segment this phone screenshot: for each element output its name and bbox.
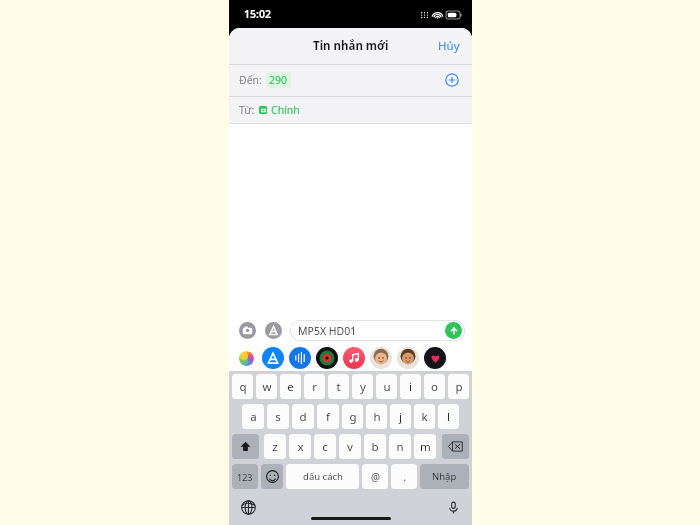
staticText: Đến: [239,73,262,87]
button[interactable]: @ [362,464,388,489]
staticText: x [297,439,304,455]
button[interactable]: b [364,434,386,459]
staticText: Hủy [438,38,460,54]
staticText: 15:02 [244,7,271,21]
button[interactable]: Backspace [442,434,469,459]
button[interactable]: q [232,374,253,399]
staticText: y [360,379,366,395]
button[interactable]: g [342,404,363,429]
button[interactable]: l [438,404,459,429]
button[interactable]: e [280,374,301,399]
other: Shift [239,440,252,453]
button[interactable]: y [352,374,373,399]
button[interactable]: m [414,434,436,459]
button[interactable]: f [317,404,339,429]
staticText: z [272,439,278,455]
button[interactable]: Photos [235,347,257,369]
staticText: i [409,379,412,395]
button[interactable]: v [339,434,361,459]
button[interactable]: Emoji [261,464,283,489]
staticText: 123 [237,471,253,483]
staticText: k [421,409,428,425]
button[interactable]: App [424,347,446,369]
button[interactable]: 123 [232,464,258,489]
button[interactable]: Apple Music [343,347,365,369]
button[interactable]: Add contact [440,68,464,92]
staticText: 290 [269,73,288,87]
button[interactable]: j [390,404,411,429]
staticText: Chính [271,103,300,117]
button[interactable]: Dictation [443,497,463,517]
staticText: j [399,409,402,425]
button[interactable]: r [304,374,325,399]
staticText: p [455,379,463,395]
staticText: t [336,379,341,395]
button[interactable]: Nhập [420,464,469,489]
staticText: v [347,439,353,455]
button[interactable]: u [376,374,397,399]
button[interactable]: App Store [262,319,284,341]
button[interactable]: h [366,404,387,429]
button[interactable]: App [262,347,284,369]
button[interactable]: i [400,374,421,399]
staticText: MP5X HD01 [298,324,445,338]
button[interactable]: Camera [236,319,258,341]
staticText: e [287,379,294,395]
button[interactable]: . [391,464,417,489]
button[interactable]: c [314,434,336,459]
staticText: l [447,409,450,425]
button[interactable]: d [292,404,314,429]
button[interactable]: p [448,374,469,399]
staticText: w [262,379,272,395]
staticText: Từ: [239,103,255,117]
button[interactable]: k [414,404,435,429]
button[interactable]: z [264,434,286,459]
other: Backspace [448,441,463,452]
staticText: . [403,470,406,484]
button[interactable]: Hủy [426,32,472,60]
button[interactable]: x [289,434,311,459]
staticText: c [322,439,328,455]
button[interactable]: dấu cách [286,464,359,489]
other: Emoji [266,470,279,483]
staticText: u [383,379,391,395]
staticText: f [326,409,330,425]
staticText: @ [371,470,380,484]
button[interactable]: Change keyboard [238,497,258,517]
staticText: n [396,439,404,455]
button[interactable]: Shift [232,434,259,459]
staticText: o [431,379,438,395]
staticText: a [250,409,257,425]
button[interactable]: n [389,434,411,459]
button[interactable]: w [256,374,277,399]
button[interactable]: Music [316,347,338,369]
staticText: m [420,439,431,455]
staticText: r [312,379,317,395]
staticText: Nhập [432,470,457,483]
button[interactable]: s [267,404,289,429]
button[interactable]: Audio [289,347,311,369]
button[interactable]: t [328,374,349,399]
button[interactable]: a [242,404,264,429]
button[interactable]: Send [445,322,462,339]
staticText: dấu cách [303,470,343,483]
staticText: s [275,409,281,425]
button[interactable]: o [424,374,445,399]
staticText: g [349,409,357,425]
staticText: b [371,439,379,455]
staticText: q [239,379,247,395]
button[interactable]: Memoji [397,347,419,369]
button[interactable]: Memoji [370,347,392,369]
staticText: d [299,409,307,425]
staticText: Tin nhắn mới [313,38,389,54]
staticText: h [373,409,381,425]
